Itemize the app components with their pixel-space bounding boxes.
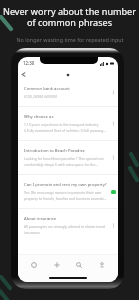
staticText: 6120, 04938 6493901	[24, 94, 58, 99]
staticText: Yes. We encourage owners to promote thei…	[24, 190, 107, 201]
button[interactable]: Why choose us	[18, 107, 118, 140]
button[interactable]: Chat	[111, 190, 116, 194]
button[interactable]: Search	[72, 258, 86, 272]
button[interactable]: Introduction to Beach Paradise	[18, 141, 118, 174]
staticText: Looking for beachfront paradise ? This s…	[24, 156, 107, 167]
staticText: Can I promote and rent my own property?	[24, 182, 107, 188]
staticText: No longer wasting time for repeated inpu…	[16, 36, 124, 43]
staticText: About insurance	[24, 216, 57, 222]
button[interactable]: Back	[19, 70, 28, 79]
staticText: Common bank account	[24, 86, 70, 92]
button[interactable]: About insurance	[18, 209, 118, 242]
button[interactable]: Add	[50, 258, 64, 272]
staticText: Never worry about the number of common p…	[3, 5, 136, 29]
staticText: 12:30	[23, 60, 35, 66]
staticText: Why choose us	[24, 114, 54, 120]
button[interactable]: Can I promote and rent my own property?	[18, 175, 118, 208]
button[interactable]: Common bank account	[18, 79, 118, 106]
button[interactable]: Profile	[95, 258, 109, 272]
staticText: Introduction to Beach Paradise	[24, 148, 85, 154]
staticText: 1.15 years experience in the transport i…	[24, 122, 107, 133]
button[interactable]: Home	[27, 258, 41, 272]
staticText: All passengers are strongly advised to o…	[24, 224, 107, 235]
